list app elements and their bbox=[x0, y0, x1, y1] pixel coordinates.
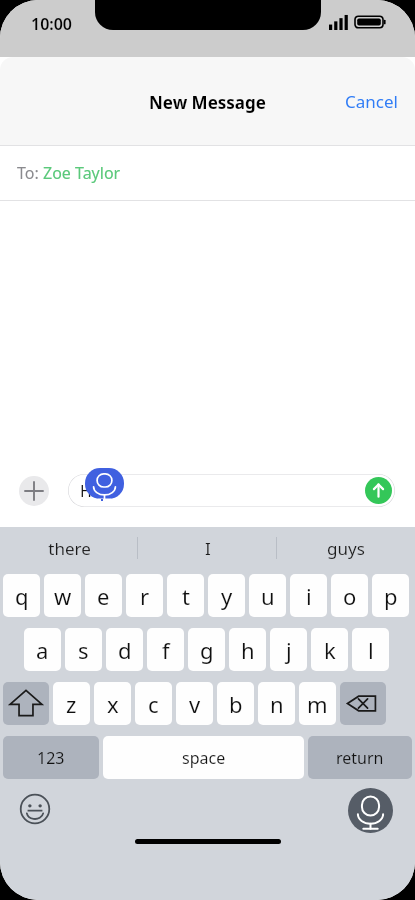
button[interactable]: b bbox=[217, 682, 254, 725]
button[interactable]: z bbox=[53, 682, 90, 725]
staticText: y bbox=[221, 581, 233, 611]
staticText: 123 bbox=[37, 747, 65, 769]
button[interactable]: Hi bbox=[68, 474, 395, 507]
staticText: q bbox=[15, 581, 29, 611]
button[interactable]: Shift bbox=[3, 682, 49, 725]
button[interactable]: Backspace bbox=[340, 682, 386, 725]
button[interactable]: l bbox=[352, 628, 389, 671]
staticText: there bbox=[48, 537, 91, 560]
button[interactable]: x bbox=[94, 682, 131, 725]
staticText: w bbox=[54, 581, 72, 611]
button[interactable]: m bbox=[299, 682, 336, 725]
staticText: t bbox=[182, 581, 190, 611]
button[interactable]: y bbox=[208, 574, 245, 617]
button[interactable]: i bbox=[290, 574, 327, 617]
button[interactable]: q bbox=[3, 574, 40, 617]
button[interactable]: guys bbox=[277, 527, 415, 569]
button[interactable]: 123 bbox=[3, 736, 99, 779]
staticText: r bbox=[140, 581, 150, 611]
staticText: k bbox=[324, 635, 336, 665]
button[interactable]: e bbox=[85, 574, 122, 617]
staticText: f bbox=[162, 635, 170, 665]
button[interactable]: f bbox=[147, 628, 184, 671]
button[interactable]: v bbox=[176, 682, 213, 725]
staticText: g bbox=[200, 635, 214, 665]
button[interactable]: Dictation bbox=[348, 788, 393, 833]
staticText: Cancel bbox=[345, 90, 398, 113]
staticText: space bbox=[182, 747, 226, 769]
button[interactable]: n bbox=[258, 682, 295, 725]
staticText: s bbox=[78, 635, 89, 665]
staticText: u bbox=[261, 581, 275, 611]
staticText: n bbox=[270, 689, 284, 719]
button[interactable]: r bbox=[126, 574, 163, 617]
button[interactable]: I bbox=[139, 527, 277, 569]
staticText: Hi bbox=[80, 480, 96, 502]
staticText: guys bbox=[327, 537, 365, 560]
button[interactable]: c bbox=[135, 682, 172, 725]
staticText: 10:00 bbox=[31, 13, 73, 35]
staticText: New Message bbox=[149, 91, 266, 114]
staticText: a bbox=[36, 635, 49, 665]
staticText: d bbox=[118, 635, 132, 665]
button[interactable]: Cancel bbox=[328, 80, 415, 123]
staticText: return bbox=[336, 747, 384, 769]
button[interactable]: s bbox=[65, 628, 102, 671]
button[interactable]: o bbox=[331, 574, 368, 617]
staticText: o bbox=[343, 581, 357, 611]
staticText: m bbox=[307, 689, 328, 719]
button[interactable]: Send bbox=[365, 477, 392, 504]
staticText: To: bbox=[17, 162, 43, 184]
button[interactable]: Add attachment bbox=[19, 476, 49, 506]
staticText: b bbox=[229, 689, 243, 719]
button[interactable]: d bbox=[106, 628, 143, 671]
button[interactable]: t bbox=[167, 574, 204, 617]
button[interactable]: k bbox=[311, 628, 348, 671]
button[interactable]: To: bbox=[0, 146, 415, 200]
button[interactable]: return bbox=[308, 736, 412, 779]
button[interactable]: a bbox=[24, 628, 61, 671]
staticText: I bbox=[205, 537, 211, 560]
staticText: i bbox=[306, 581, 312, 611]
staticText: p bbox=[384, 581, 398, 611]
staticText: z bbox=[66, 689, 77, 719]
staticText: j bbox=[286, 635, 292, 665]
staticText: l bbox=[368, 635, 374, 665]
button[interactable]: u bbox=[249, 574, 286, 617]
button[interactable]: j bbox=[270, 628, 307, 671]
staticText: e bbox=[97, 581, 110, 611]
button[interactable]: w bbox=[44, 574, 81, 617]
button[interactable]: p bbox=[372, 574, 409, 617]
staticText: Zoe Taylor bbox=[43, 162, 121, 184]
button[interactable]: space bbox=[103, 736, 304, 779]
staticText: h bbox=[241, 635, 255, 665]
staticText: v bbox=[189, 689, 201, 719]
staticText: x bbox=[107, 689, 119, 719]
button[interactable]: h bbox=[229, 628, 266, 671]
staticText: c bbox=[148, 689, 159, 719]
button[interactable]: Emoji bbox=[18, 792, 52, 826]
button[interactable]: there bbox=[0, 527, 139, 569]
button[interactable]: g bbox=[188, 628, 225, 671]
button[interactable]: Voice input bbox=[85, 468, 124, 499]
